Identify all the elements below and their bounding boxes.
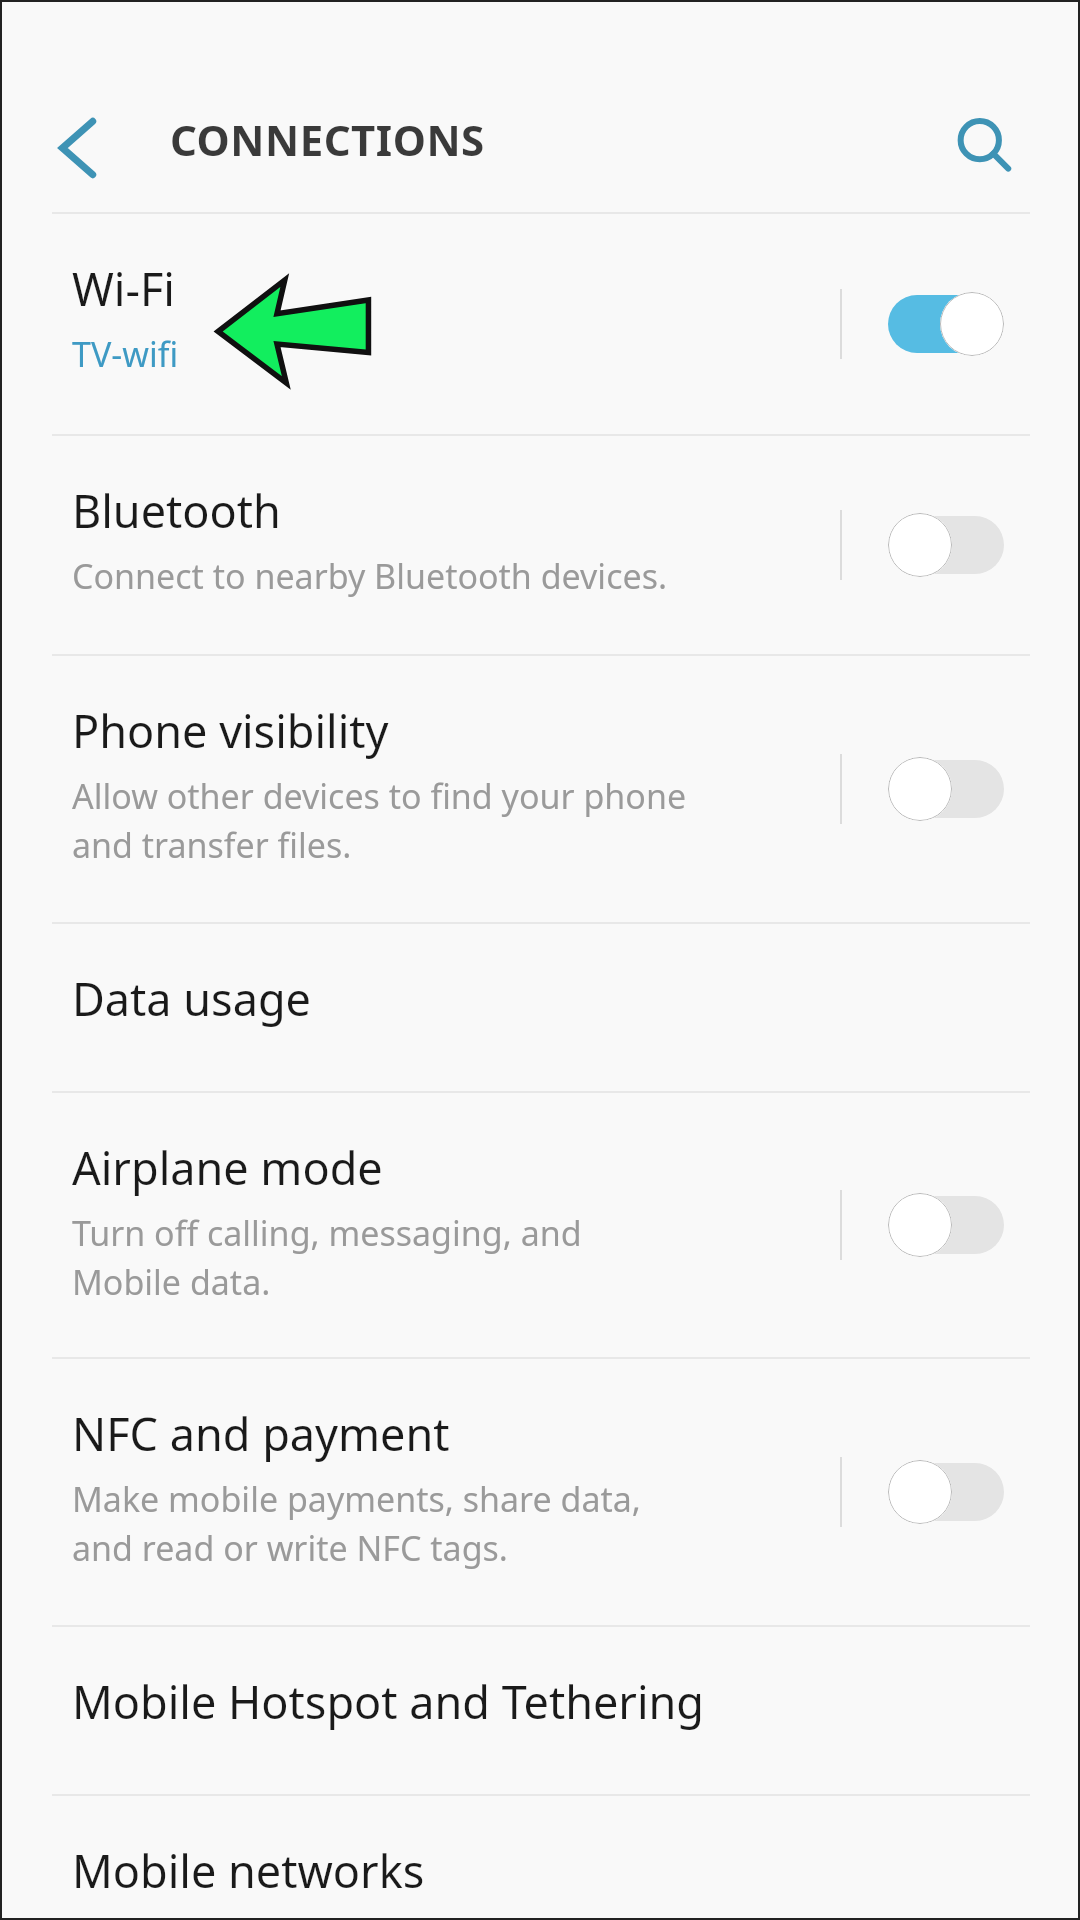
button[interactable]: Phone visibility toggle — [840, 750, 1004, 828]
button[interactable]: NFC and payment — [0, 1359, 1080, 1625]
button[interactable]: NFC and payment toggle — [840, 1453, 1004, 1531]
button[interactable]: Mobile networks — [0, 1796, 1080, 1920]
staticText: Make mobile payments, share data, and re… — [72, 1476, 641, 1571]
staticText: TV-wifi — [72, 331, 179, 377]
button[interactable]: Wi-Fi — [0, 214, 1080, 434]
staticText: Airplane mode — [72, 1137, 383, 1198]
staticText: Data usage — [72, 968, 311, 1029]
staticText: Mobile Hotspot and Tethering — [72, 1671, 705, 1732]
staticText: Bluetooth — [72, 480, 281, 541]
button[interactable]: Airplane mode toggle — [840, 1186, 1004, 1264]
button[interactable]: Phone visibility — [0, 656, 1080, 922]
button[interactable]: Wi-Fi toggle — [840, 285, 1004, 363]
staticText: Phone visibility — [72, 700, 389, 761]
staticText: Wi-Fi — [72, 258, 175, 319]
button[interactable]: Search — [935, 96, 1035, 196]
button[interactable]: Airplane mode — [0, 1093, 1080, 1357]
button[interactable]: Data usage — [0, 924, 1080, 1091]
staticText: CONNECTIONS — [170, 111, 485, 168]
button[interactable]: Mobile Hotspot and Tethering — [0, 1627, 1080, 1794]
button[interactable]: Bluetooth toggle — [840, 506, 1004, 584]
staticText: Turn off calling, messaging, and Mobile … — [72, 1210, 582, 1305]
button[interactable]: Back — [30, 100, 126, 196]
staticText: Mobile networks — [72, 1840, 425, 1901]
button[interactable]: Bluetooth — [0, 436, 1080, 654]
staticText: Connect to nearby Bluetooth devices. — [72, 553, 668, 599]
staticText: NFC and payment — [72, 1403, 450, 1464]
staticText: Allow other devices to find your phone a… — [72, 773, 687, 868]
